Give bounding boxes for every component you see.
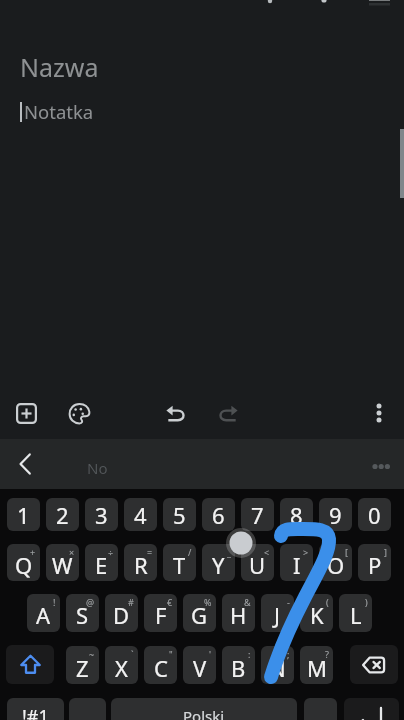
button[interactable]: 9 <box>319 498 352 531</box>
staticText: ÷ <box>108 546 114 558</box>
button[interactable]: Polski <box>111 698 297 720</box>
staticText: # <box>128 596 134 608</box>
button[interactable]: Undo <box>154 391 198 435</box>
staticText: S <box>76 600 89 630</box>
button[interactable]: Redo <box>206 391 250 435</box>
button[interactable]: T <box>163 544 196 581</box>
button[interactable]: K <box>300 594 333 632</box>
staticText: Nazwa <box>20 50 99 84</box>
staticText: ? <box>325 648 329 660</box>
button[interactable]: Enter <box>344 698 399 720</box>
staticText: X <box>115 653 128 683</box>
button[interactable]: R <box>124 544 157 581</box>
staticText: & <box>244 596 251 608</box>
staticText: Z <box>76 653 89 683</box>
staticText: % <box>204 596 212 608</box>
staticText: ( <box>326 596 329 608</box>
staticText: Notatka <box>24 99 94 124</box>
button[interactable]: J <box>261 594 294 632</box>
button[interactable]: 4 <box>124 498 157 531</box>
staticText: K <box>310 600 324 630</box>
button[interactable]: Period <box>304 698 337 720</box>
staticText: E <box>95 550 108 580</box>
button[interactable]: S <box>66 594 99 632</box>
staticText: M <box>307 653 327 683</box>
staticText: B <box>231 653 246 683</box>
staticText: F <box>155 600 167 630</box>
button[interactable]: Q <box>7 544 40 581</box>
staticText: P <box>368 550 382 580</box>
staticText: O <box>327 550 345 580</box>
staticText: " <box>169 648 173 660</box>
button[interactable]: More options <box>357 391 401 435</box>
button[interactable]: Background colour <box>57 391 101 435</box>
button[interactable]: Save <box>360 0 400 10</box>
button[interactable]: 1 <box>7 498 40 531</box>
button[interactable]: Y <box>202 544 235 581</box>
button[interactable]: O <box>319 544 352 581</box>
button[interactable]: C <box>144 646 177 684</box>
staticText: I <box>293 550 301 580</box>
button[interactable]: 8 <box>280 498 313 531</box>
staticText: _ <box>227 546 231 558</box>
button[interactable]: A <box>27 594 60 632</box>
button[interactable]: 2 <box>46 498 79 531</box>
button[interactable]: Add <box>4 391 48 435</box>
button[interactable]: V <box>183 646 216 684</box>
button[interactable]: Expand toolbar <box>2 439 48 489</box>
button[interactable]: U <box>241 544 274 581</box>
button[interactable]: 5 <box>163 498 196 531</box>
staticText: N <box>269 653 286 683</box>
staticText: Y <box>212 550 225 580</box>
button[interactable]: I <box>280 544 313 581</box>
button[interactable]: N <box>261 646 294 684</box>
staticText: L <box>350 600 362 630</box>
button[interactable]: P <box>358 544 391 581</box>
staticText: A <box>36 600 51 630</box>
staticText: No <box>87 458 108 478</box>
staticText: W <box>52 550 73 580</box>
button[interactable]: Emoji <box>69 698 106 720</box>
button[interactable]: H <box>222 594 255 632</box>
staticText: - <box>287 596 290 608</box>
staticText: ` <box>131 648 134 660</box>
button[interactable]: !#1 <box>7 698 64 720</box>
button[interactable]: G <box>183 594 216 632</box>
button[interactable]: Caps lock <box>6 645 54 684</box>
staticText: 6 <box>212 500 225 530</box>
button[interactable]: 3 <box>85 498 118 531</box>
staticText: R <box>134 550 148 580</box>
button[interactable]: W <box>46 544 79 581</box>
staticText: 7 <box>251 500 264 530</box>
staticText: ] <box>384 546 387 558</box>
staticText: G <box>191 600 208 630</box>
button[interactable]: M <box>300 646 333 684</box>
staticText: 2 <box>56 500 69 530</box>
staticText: 8 <box>290 500 303 530</box>
staticText: U <box>249 550 266 580</box>
button[interactable]: 7 <box>241 498 274 531</box>
button[interactable]: X <box>105 646 138 684</box>
staticText: = <box>147 546 153 558</box>
button[interactable]: D <box>105 594 138 632</box>
button[interactable]: Backspace <box>350 645 398 684</box>
staticText: : <box>248 648 251 660</box>
button[interactable]: Z <box>66 646 99 684</box>
button[interactable]: Pin <box>254 0 290 6</box>
button[interactable]: E <box>85 544 118 581</box>
button[interactable]: Reminder <box>306 0 342 6</box>
button[interactable]: 0 <box>358 498 391 531</box>
staticText: > <box>303 546 309 558</box>
staticText: ~ <box>89 648 95 660</box>
staticText: H <box>230 600 247 630</box>
staticText: D <box>113 600 130 630</box>
button[interactable]: B <box>222 646 255 684</box>
button[interactable]: F <box>144 594 177 632</box>
button[interactable]: More suggestions <box>358 439 404 489</box>
staticText: 3 <box>95 500 108 530</box>
staticText: V <box>193 653 207 683</box>
staticText: [ <box>345 546 348 558</box>
staticText: T <box>173 550 186 580</box>
button[interactable]: L <box>339 594 372 632</box>
button[interactable]: 6 <box>202 498 235 531</box>
